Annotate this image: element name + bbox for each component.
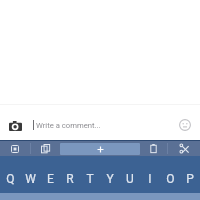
button[interactable]: U (120, 156, 140, 193)
staticText: O (166, 172, 175, 186)
staticText: I (148, 172, 152, 186)
button[interactable]: Cut (168, 141, 200, 156)
button[interactable]: W (20, 156, 40, 193)
staticText: T (86, 172, 94, 186)
button[interactable]: Emoji (175, 115, 195, 135)
staticText: Q (6, 172, 15, 186)
staticText: R (66, 172, 74, 186)
button[interactable]: Move cursor (60, 143, 140, 155)
button[interactable]: P (180, 156, 200, 193)
button[interactable]: Copy (31, 141, 60, 156)
button[interactable]: Q (0, 156, 20, 193)
button[interactable]: Paste (140, 141, 167, 156)
staticText: E (47, 172, 54, 186)
button[interactable]: Camera (5, 115, 26, 136)
staticText: W (25, 172, 36, 186)
button[interactable]: Y (100, 156, 120, 193)
button[interactable]: Select all (0, 141, 30, 156)
button[interactable]: E (40, 156, 60, 193)
staticText: Y (106, 172, 114, 186)
button[interactable]: R (60, 156, 80, 193)
staticText: Write a comment... (36, 121, 101, 130)
button[interactable]: T (80, 156, 100, 193)
staticText: U (126, 172, 134, 186)
button[interactable]: I (140, 156, 160, 193)
button[interactable]: O (160, 156, 180, 193)
staticText: P (186, 172, 194, 186)
